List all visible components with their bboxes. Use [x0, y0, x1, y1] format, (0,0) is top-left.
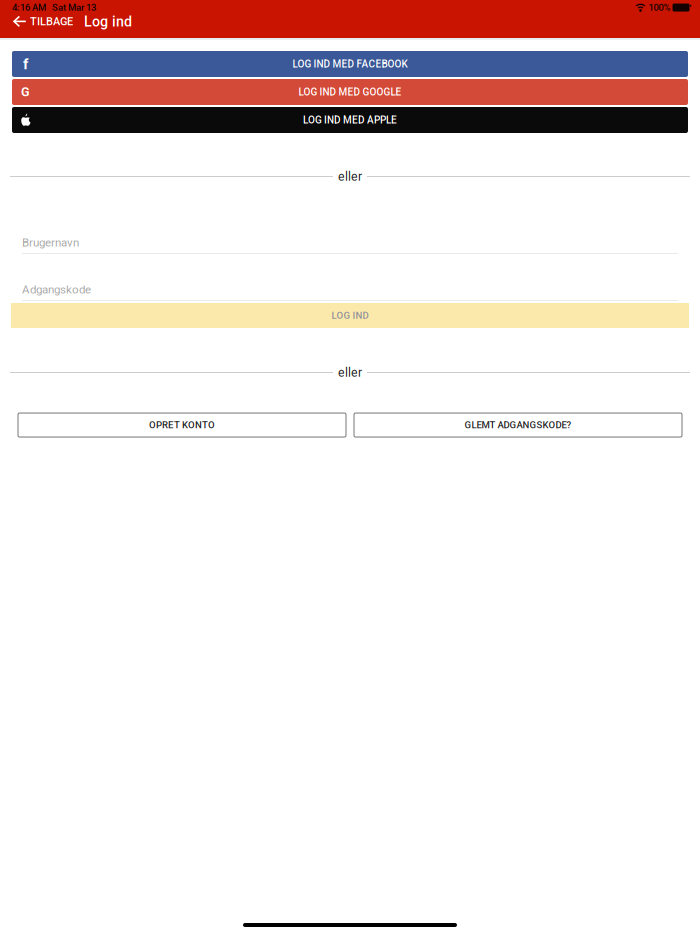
- staticText: 100%: [648, 2, 670, 13]
- staticText: 4:16 AM Sat Mar 13: [12, 2, 96, 13]
- staticText: LOG IND MED FACEBOOK: [292, 58, 407, 70]
- staticText: LOG IND: [331, 310, 368, 321]
- staticText: f: [23, 55, 28, 73]
- staticText: Brugernavn: [22, 236, 79, 249]
- staticText: Log ind: [84, 13, 132, 30]
- button[interactable]: TILBAGE: [0, 12, 79, 30]
- staticText: G: [21, 85, 30, 99]
- staticText: OPRET KONTO: [149, 419, 215, 431]
- staticText: eller: [338, 169, 362, 184]
- staticText: LOG IND MED APPLE: [303, 114, 397, 126]
- staticText: TILBAGE: [30, 15, 73, 28]
- staticText: eller: [338, 365, 362, 380]
- staticText: GLEMT ADGANGSKODE?: [464, 419, 571, 431]
- button[interactable]: OPRET KONTO: [18, 413, 346, 437]
- button[interactable]: LOG IND MED APPLE: [12, 107, 688, 133]
- button[interactable]: G: [12, 79, 688, 105]
- staticText: LOG IND MED GOOGLE: [298, 86, 401, 98]
- button[interactable]: GLEMT ADGANGSKODE?: [354, 413, 682, 437]
- button[interactable]: f: [12, 51, 688, 77]
- button[interactable]: LOG IND: [11, 303, 689, 328]
- staticText: Adgangskode: [22, 283, 91, 296]
